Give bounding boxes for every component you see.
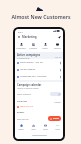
staticText: Marketing [22, 35, 37, 39]
button[interactable]: Abandoned cart · reminder [15, 73, 63, 80]
staticText: Abandoned cart · reminder [20, 75, 47, 78]
staticText: Select audience [17, 93, 31, 96]
button[interactable]: Spring promo · 40% off [15, 59, 63, 66]
button[interactable]: More [51, 121, 63, 130]
staticText: Budget [17, 111, 25, 114]
button[interactable]: More options [59, 61, 62, 64]
staticText: See all [55, 56, 61, 59]
button[interactable]: Campaigns [15, 40, 27, 49]
button[interactable]: Audience [27, 40, 39, 49]
staticText: Loyalty rewards [20, 68, 36, 71]
staticText: Offers [42, 47, 48, 49]
button[interactable]: Offers [39, 40, 51, 49]
staticText: Send time [17, 100, 28, 103]
button[interactable]: More options [59, 75, 62, 78]
staticText: Create [53, 117, 59, 120]
staticText: Daily limit set [17, 118, 29, 120]
staticText: Spring promo · 40% off [20, 61, 43, 64]
staticText: Change [54, 101, 61, 103]
staticText: Reports [54, 47, 61, 49]
button[interactable] [50, 92, 61, 96]
staticText: Campaign calendar [17, 83, 42, 87]
staticText: Home [18, 128, 24, 130]
staticText: Almost New Customers [11, 13, 71, 20]
staticText: Active campaigns [17, 53, 40, 57]
staticText: Campaigns [16, 47, 26, 49]
staticText: 9:41 [18, 30, 23, 33]
staticText: 4 running now [17, 57, 30, 59]
staticText: Audience [29, 47, 37, 49]
staticText: More [55, 128, 60, 130]
button[interactable]: Create [48, 116, 61, 121]
staticText: Inbox [43, 128, 48, 130]
button[interactable]: Stats [27, 121, 39, 130]
button[interactable]: See all [55, 53, 61, 59]
button[interactable]: Inbox [39, 121, 51, 130]
staticText: Today 9:00 AM [20, 105, 33, 108]
button[interactable]: Home [15, 121, 27, 130]
button[interactable]: Reports [51, 40, 63, 49]
button[interactable]: Loyalty rewards [15, 66, 63, 73]
button[interactable]: Open menu [17, 35, 21, 39]
staticText: Launch all balance sheets [17, 87, 39, 89]
staticText: Stats [31, 128, 36, 130]
button[interactable]: Notifications [57, 35, 61, 39]
button[interactable]: More options [59, 68, 62, 71]
